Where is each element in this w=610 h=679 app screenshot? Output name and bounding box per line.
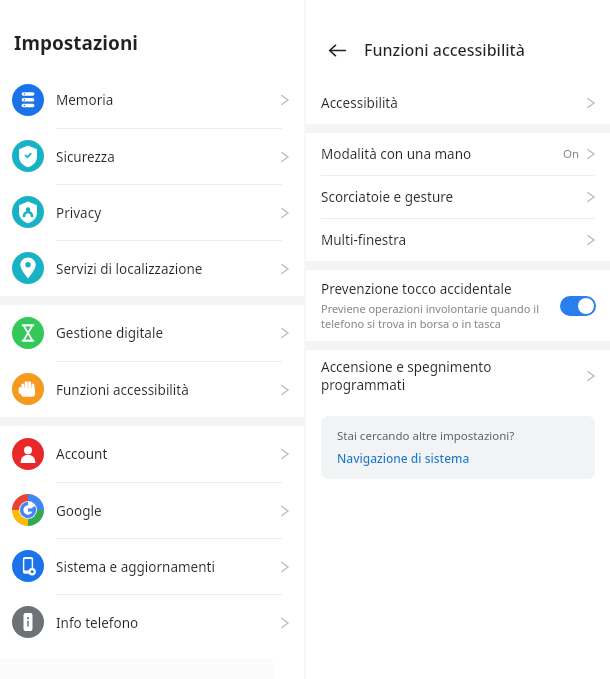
- button[interactable]: Multi-finestra: [306, 218, 610, 261]
- staticText: Prevenzione tocco accidentale: [321, 280, 512, 298]
- staticText: programmati: [321, 376, 406, 394]
- staticText: Account: [56, 445, 280, 463]
- button[interactable]: Accessibilità: [306, 82, 610, 124]
- staticText: Modalità con una mano: [321, 145, 563, 163]
- button[interactable]: Indietro: [320, 33, 354, 67]
- staticText: Funzioni accessibilità: [364, 39, 525, 61]
- staticText: Servizi di localizzazione: [56, 260, 280, 278]
- staticText: On: [563, 146, 580, 162]
- button[interactable]: Prevenzione tocco accidentale: [306, 270, 610, 341]
- button[interactable]: Accensione e spegnimento: [306, 350, 610, 402]
- staticText: Navigazione di sistema: [337, 450, 470, 466]
- staticText: Multi-finestra: [321, 231, 586, 249]
- staticText: Funzioni accessibilità: [56, 381, 280, 399]
- button[interactable]: Account: [0, 426, 304, 482]
- button[interactable]: Memoria: [0, 72, 304, 128]
- button[interactable]: Stai cercando altre impostazioni?: [321, 416, 595, 479]
- staticText: Info telefono: [56, 614, 280, 632]
- staticText: Sicurezza: [56, 148, 280, 166]
- button[interactable]: Servizi di localizzazione: [0, 240, 304, 296]
- staticText: Accessibilità: [321, 94, 586, 112]
- other: Attiva prevenzione tocco accidentale: [560, 296, 596, 316]
- staticText: Google: [56, 502, 280, 520]
- staticText: Memoria: [56, 91, 280, 109]
- staticText: Privacy: [56, 204, 280, 222]
- staticText: Scorciatoie e gesture: [321, 188, 586, 206]
- staticText: Previene operazioni involontarie quando …: [321, 301, 550, 331]
- button[interactable]: Scorciatoie e gesture: [306, 175, 610, 218]
- button[interactable]: Gestione digitale: [0, 305, 304, 361]
- staticText: Stai cercando altre impostazioni?: [337, 428, 515, 444]
- staticText: Accensione e spegnimento: [321, 358, 492, 376]
- button[interactable]: Sistema e aggiornamenti: [0, 538, 304, 594]
- button[interactable]: Modalità con una mano: [306, 133, 610, 175]
- button[interactable]: Info telefono: [0, 594, 304, 650]
- button[interactable]: Sicurezza: [0, 128, 304, 184]
- staticText: Sistema e aggiornamenti: [56, 558, 280, 576]
- button[interactable]: Privacy: [0, 184, 304, 240]
- button[interactable]: Funzioni accessibilità: [0, 361, 304, 417]
- button[interactable]: Google: [0, 482, 304, 538]
- staticText: Gestione digitale: [56, 324, 280, 342]
- staticText: Impostazioni: [14, 30, 138, 56]
